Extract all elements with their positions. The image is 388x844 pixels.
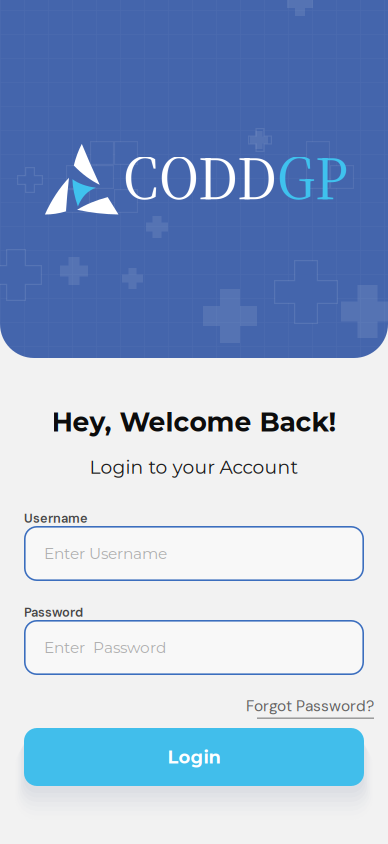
staticText: Username xyxy=(24,510,88,527)
staticText: GP xyxy=(277,137,348,219)
button[interactable]: Forgot Password? xyxy=(246,696,374,719)
staticText: Hey, Welcome Back! xyxy=(51,406,336,438)
staticText: Login xyxy=(167,746,220,768)
button[interactable]: Login xyxy=(24,728,364,786)
staticText: Login to your Account xyxy=(89,456,298,478)
staticText: CODD xyxy=(123,137,277,219)
staticText: Enter Password xyxy=(44,638,166,657)
staticText: Enter Username xyxy=(44,544,167,563)
staticText: Password xyxy=(24,604,83,621)
staticText: Forgot Password? xyxy=(246,696,374,716)
